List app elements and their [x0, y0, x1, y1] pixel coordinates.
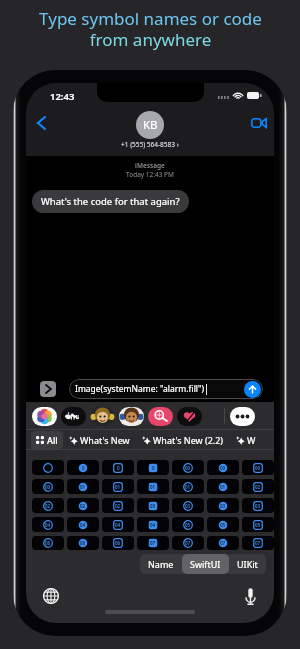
staticText: What's the code for that again? — [41, 195, 180, 208]
button[interactable]: Symbol — [137, 536, 169, 550]
button[interactable]: Symbol — [67, 536, 99, 550]
button[interactable]: Symbol — [137, 498, 169, 513]
button[interactable]: What's New — [63, 432, 136, 448]
staticText: 03 — [150, 503, 156, 509]
staticText: 0 — [152, 465, 155, 471]
button[interactable]: Symbol — [102, 536, 134, 550]
button[interactable]: Symbol — [32, 536, 64, 550]
button[interactable]: Show apps — [40, 381, 56, 397]
button[interactable]: Symbol — [32, 517, 64, 532]
staticText: 05 — [185, 522, 191, 528]
staticText: Image(systemName: "alarm.fill") — [75, 383, 205, 395]
button[interactable]: SwiftUI — [182, 554, 229, 574]
button[interactable]: Symbol — [102, 498, 134, 513]
staticText: 03 — [255, 503, 261, 509]
button[interactable]: Symbol — [242, 536, 274, 550]
button[interactable]: Send — [244, 381, 261, 398]
staticText: Today 12:43 PM — [26, 170, 274, 179]
button[interactable]: Symbol — [207, 460, 239, 475]
button[interactable]: Symbol — [67, 517, 99, 532]
staticText: UIKit — [237, 558, 258, 570]
staticText: 07 — [220, 540, 226, 546]
staticText: 02 — [45, 503, 51, 509]
button[interactable]: Name — [140, 554, 182, 574]
staticText: 05 — [220, 522, 226, 528]
button[interactable]: Symbol — [242, 460, 274, 475]
button[interactable]: App Store — [32, 407, 57, 426]
staticText: 01 — [220, 484, 226, 490]
button[interactable]: What's the code for that again? — [32, 190, 189, 213]
button[interactable]: Memoji — [119, 407, 144, 426]
button[interactable]: Symbol — [172, 479, 204, 494]
staticText: 00 — [255, 465, 261, 471]
staticText: 06 — [45, 540, 51, 546]
staticText: KB — [143, 117, 158, 133]
button[interactable]: KB — [121, 111, 179, 149]
button[interactable]: Symbol — [67, 498, 99, 513]
staticText: 07 — [185, 540, 191, 546]
button[interactable]: Symbol — [102, 460, 134, 475]
button[interactable]: Symbol — [207, 498, 239, 513]
button[interactable]: Symbol — [32, 479, 64, 494]
button[interactable]: W — [230, 432, 262, 448]
staticText: What's New (2.2) — [153, 434, 224, 446]
staticText: All — [47, 434, 58, 446]
staticText: iMessage — [26, 161, 274, 170]
staticText: 01 — [80, 484, 86, 490]
button[interactable]: Symbol — [172, 460, 204, 475]
button[interactable]: More — [230, 407, 255, 426]
button[interactable]: Symbol — [172, 517, 204, 532]
staticText: SwiftUI — [190, 558, 221, 570]
button[interactable]: Digital Touch — [177, 407, 202, 426]
button[interactable]: Symbol — [67, 479, 99, 494]
button[interactable]: All — [31, 431, 63, 449]
staticText: W — [247, 434, 256, 446]
staticText: 02 — [80, 503, 86, 509]
staticText: 07 — [255, 540, 261, 546]
button[interactable]: Symbol — [207, 517, 239, 532]
staticText: What's New — [80, 434, 130, 446]
button[interactable]: Back — [30, 112, 52, 134]
staticText: 06 — [115, 540, 121, 546]
staticText: 00 — [220, 465, 226, 471]
staticText: 00 — [185, 465, 191, 471]
staticText: 01 — [115, 484, 121, 490]
staticText: Type symbol names or code from anywhere — [39, 7, 262, 51]
button[interactable]: Memoji — [90, 407, 115, 426]
button[interactable]: Symbol — [137, 479, 169, 494]
staticText: 07 — [150, 540, 156, 546]
staticText: 03 — [185, 503, 191, 509]
staticText: 01 — [150, 484, 156, 490]
button[interactable]: Symbol — [172, 536, 204, 550]
button[interactable]: Switch keyboard — [38, 583, 64, 609]
staticText: Name — [148, 558, 174, 570]
staticText: 03 — [220, 503, 226, 509]
button[interactable]: Symbol — [32, 498, 64, 513]
button[interactable]: Symbol — [207, 479, 239, 494]
button[interactable]: Dictate — [237, 583, 263, 609]
button[interactable]: Symbol — [137, 460, 169, 475]
button[interactable]: Symbol search — [148, 407, 173, 426]
button[interactable]: FaceTime video call — [248, 112, 270, 134]
button[interactable]: Symbol — [207, 536, 239, 550]
button[interactable]: Symbol — [242, 517, 274, 532]
staticText: 06 — [80, 540, 86, 546]
staticText: 02 — [115, 503, 121, 509]
button[interactable]: Apple Pay — [61, 407, 86, 426]
button[interactable]: Symbol — [32, 460, 64, 475]
button[interactable]: Symbol — [137, 517, 169, 532]
button[interactable]: Symbol — [172, 498, 204, 513]
button[interactable]: Symbol — [242, 479, 274, 494]
staticText: 04 — [80, 522, 86, 528]
button[interactable]: UIKit — [229, 554, 266, 574]
staticText: 04 — [150, 522, 156, 528]
button[interactable]: Symbol — [242, 498, 274, 513]
button[interactable]: Symbol — [67, 460, 99, 475]
button[interactable]: Symbol — [102, 517, 134, 532]
staticText: 0 — [82, 465, 85, 471]
staticText: 05 — [255, 522, 261, 528]
button[interactable]: What's New (2.2) — [136, 432, 230, 448]
button[interactable]: Image(systemName: "alarm.fill") — [69, 379, 263, 399]
button[interactable]: Symbol — [102, 479, 134, 494]
staticText: 00 — [45, 484, 51, 490]
